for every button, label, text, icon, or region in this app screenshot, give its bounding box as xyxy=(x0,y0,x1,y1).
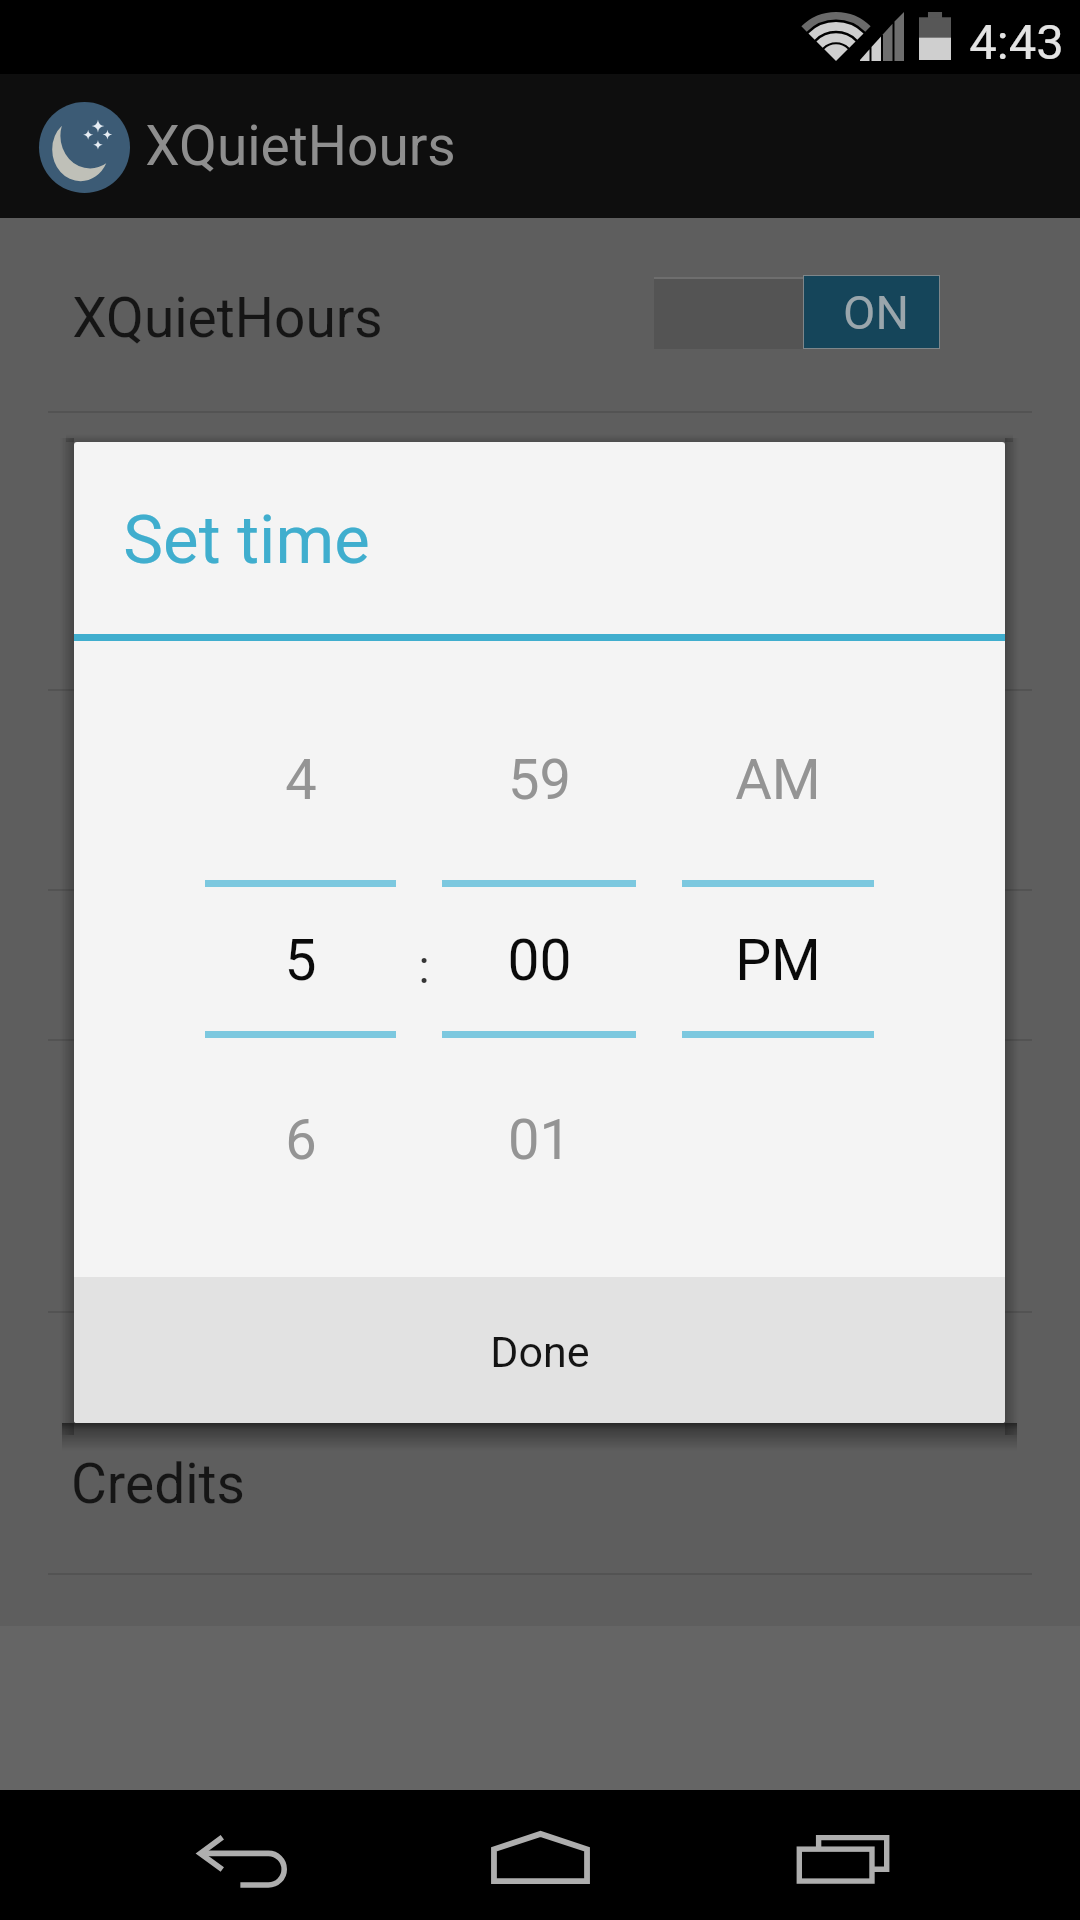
button[interactable]: 00 xyxy=(442,920,636,1000)
staticText: Done xyxy=(490,1327,590,1377)
button[interactable]: PM xyxy=(682,920,874,1000)
button[interactable]: XQuietHours xyxy=(0,218,1080,412)
staticText: 5 xyxy=(284,927,317,994)
staticText: PM xyxy=(735,927,821,994)
staticText: XQuietHours xyxy=(72,286,383,350)
staticText: 6 xyxy=(285,1107,317,1173)
staticText: AM xyxy=(735,747,821,813)
staticText: Credits xyxy=(71,1452,245,1516)
staticText: : xyxy=(418,940,430,992)
staticText: 59 xyxy=(508,747,571,813)
staticText: 4:43 xyxy=(969,14,1064,71)
staticText: 4 xyxy=(285,747,317,813)
button[interactable]: Back xyxy=(153,1795,333,1920)
staticText: Set time xyxy=(123,501,370,580)
button[interactable]: ON xyxy=(654,275,940,349)
button[interactable]: Recent apps xyxy=(753,1794,933,1920)
button[interactable]: 5 xyxy=(205,920,396,1000)
staticText: 01 xyxy=(508,1107,571,1173)
staticText: ON xyxy=(843,285,909,340)
staticText: 00 xyxy=(507,927,572,994)
button[interactable]: Done xyxy=(74,1277,1005,1423)
button[interactable]: Credits xyxy=(0,1415,1080,1573)
button[interactable]: Home xyxy=(450,1792,630,1920)
staticText: XQuietHours xyxy=(145,114,456,178)
